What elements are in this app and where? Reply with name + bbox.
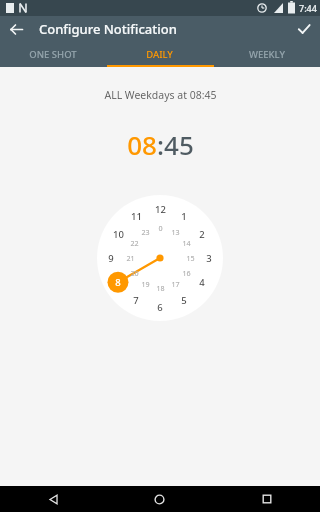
- staticText: 0: [158, 223, 163, 233]
- button[interactable]: Hour picker clock: [97, 195, 223, 321]
- staticText: 1: [181, 210, 187, 222]
- staticText: 19: [141, 279, 150, 289]
- staticText: 2: [199, 228, 205, 240]
- staticText: 17: [171, 279, 180, 289]
- button[interactable]: ONE SHOT: [0, 42, 106, 67]
- staticText: 22: [130, 238, 139, 248]
- staticText: WEEKLY: [249, 48, 285, 61]
- button[interactable]: Confirm: [292, 17, 316, 41]
- staticText: 8: [115, 276, 121, 288]
- button[interactable]: Back: [0, 486, 106, 512]
- staticText: 08:45: [127, 127, 194, 162]
- button[interactable]: DAILY: [106, 42, 213, 67]
- staticText: ALL Weekdays at 08:45: [104, 88, 217, 102]
- staticText: 9: [108, 252, 114, 264]
- button[interactable]: Recent apps: [213, 486, 320, 512]
- button[interactable]: Back: [4, 17, 28, 41]
- staticText: 6: [157, 301, 163, 313]
- staticText: 16: [182, 268, 191, 278]
- staticText: 15: [186, 253, 195, 263]
- staticText: 5: [181, 294, 187, 306]
- staticText: DAILY: [146, 48, 173, 61]
- staticText: 3: [206, 252, 212, 264]
- staticText: 14: [182, 238, 191, 248]
- staticText: 11: [131, 210, 142, 222]
- staticText: 18: [156, 283, 165, 293]
- staticText: ONE SHOT: [29, 48, 77, 61]
- staticText: 23: [141, 227, 150, 237]
- staticText: 12: [155, 203, 166, 215]
- staticText: 4: [199, 276, 205, 288]
- staticText: 13: [171, 227, 180, 237]
- staticText: 7: [133, 294, 139, 306]
- staticText: 7:44: [299, 2, 317, 14]
- button[interactable]: Home: [106, 486, 213, 512]
- staticText: 10: [113, 228, 124, 240]
- staticText: 21: [126, 253, 135, 263]
- button[interactable]: WEEKLY: [213, 42, 320, 67]
- staticText: 20: [130, 268, 139, 278]
- staticText: Configure Notification: [39, 20, 177, 38]
